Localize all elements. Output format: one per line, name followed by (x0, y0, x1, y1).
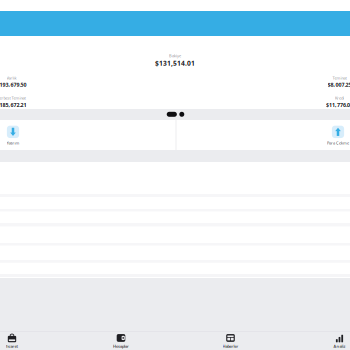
button[interactable]: Ticaret (0, 333, 66, 349)
staticText: Teminat (332, 75, 346, 80)
staticText: Kredi (335, 95, 344, 101)
staticText: $131,514.01 (155, 59, 195, 68)
staticText: Yatırım (6, 140, 19, 145)
staticText: $11,776.04 (326, 101, 350, 108)
staticText: Ticaret (5, 343, 18, 349)
staticText: $185,672.21 (0, 101, 26, 108)
button[interactable]: Yatırım (0, 123, 48, 149)
button[interactable]: Hesaplar (66, 333, 175, 349)
staticText: Serbest Teminat (0, 95, 25, 101)
button[interactable]: Para Çekme (303, 123, 350, 149)
staticText: Haberler (222, 343, 238, 349)
staticText: Bakiye (169, 53, 181, 58)
staticText: $8,007.25 (327, 81, 350, 88)
staticText: Para Çekme (327, 140, 349, 145)
staticText: $193,679.50 (0, 81, 26, 88)
staticText: Hesaplar (113, 343, 129, 349)
button[interactable]: Analiz (285, 333, 350, 349)
staticText: Varlık (6, 75, 16, 80)
button[interactable]: Haberler (176, 333, 285, 349)
staticText: Analiz (333, 343, 345, 349)
